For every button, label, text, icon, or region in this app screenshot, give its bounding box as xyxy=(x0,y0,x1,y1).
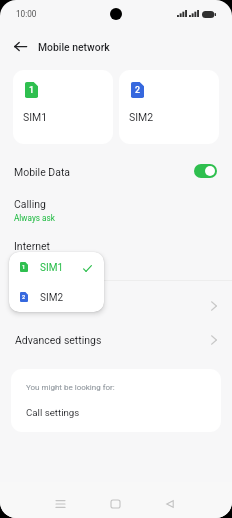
staticText: 10:00 xyxy=(16,9,37,19)
staticText: Call settings xyxy=(26,407,80,418)
staticText: SIM1 xyxy=(40,262,64,274)
button[interactable]: Mobile Data xyxy=(0,154,232,188)
staticText: SIM2 xyxy=(40,292,64,304)
button[interactable]: SIM card info xyxy=(0,289,232,323)
staticText: SIM1 xyxy=(14,255,33,265)
button[interactable]: Call settings xyxy=(26,407,80,418)
staticText: 1 xyxy=(22,264,26,270)
button[interactable]: Calling xyxy=(0,190,232,228)
staticText: 2 xyxy=(22,294,26,300)
button[interactable]: 1 xyxy=(13,70,113,144)
staticText: Calling xyxy=(14,198,46,210)
staticText: Mobile network xyxy=(38,41,110,53)
button[interactable]: Internet xyxy=(0,232,232,270)
staticText: SIM1 xyxy=(23,111,48,123)
staticText: SIM2 xyxy=(129,111,154,123)
staticText: 2 xyxy=(135,85,140,95)
button[interactable]: 2 xyxy=(119,70,219,144)
button[interactable]: Recent apps xyxy=(45,489,75,518)
button[interactable]: Back xyxy=(155,489,185,518)
button[interactable]: Mobile data xyxy=(194,164,217,178)
button[interactable]: Home xyxy=(100,489,130,518)
staticText: You might be looking for: xyxy=(26,383,115,392)
staticText: SIM card info xyxy=(15,298,78,310)
button[interactable]: 2 xyxy=(9,282,104,312)
staticText: Advanced settings xyxy=(15,334,102,346)
staticText: Mobile Data xyxy=(14,166,71,178)
staticText: Always ask xyxy=(14,213,55,223)
button[interactable]: 1 xyxy=(9,252,104,282)
staticText: 1 xyxy=(29,85,34,95)
button[interactable]: Advanced settings xyxy=(0,323,232,357)
button[interactable]: Back xyxy=(6,32,34,60)
staticText: Internet xyxy=(14,240,51,252)
